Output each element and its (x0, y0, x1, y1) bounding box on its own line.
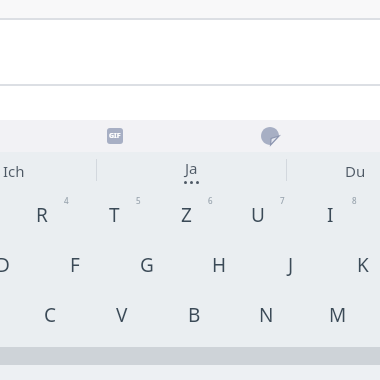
button[interactable]: Du (287, 152, 380, 190)
button[interactable]: U (222, 190, 294, 240)
button[interactable]: D (0, 240, 39, 290)
button[interactable]: K (327, 240, 380, 290)
button[interactable]: J (255, 240, 327, 290)
staticText: M (329, 302, 347, 328)
button[interactable]: B (158, 290, 230, 340)
staticText: H (212, 252, 227, 278)
button[interactable]: Ich (0, 152, 96, 190)
staticText: K (357, 252, 369, 278)
staticText: Ich (3, 161, 25, 181)
staticText: D (0, 252, 10, 278)
staticText: G (140, 252, 154, 278)
button[interactable]: M (302, 290, 374, 340)
staticText: C (44, 302, 57, 328)
staticText: 7 (280, 195, 285, 206)
button[interactable]: R (6, 190, 78, 240)
button[interactable]: G (111, 240, 183, 290)
staticText: 5 (136, 195, 141, 206)
staticText: 4 (64, 195, 69, 206)
button[interactable]: T (78, 190, 150, 240)
button[interactable]: N (230, 290, 302, 340)
staticText: B (188, 302, 201, 328)
staticText: I (327, 202, 334, 228)
staticText: 8 (352, 195, 357, 206)
staticText: R (36, 202, 48, 228)
button[interactable]: V (86, 290, 158, 340)
button[interactable]: C (14, 290, 86, 340)
button[interactable]: Z (150, 190, 222, 240)
button[interactable]: H (183, 240, 255, 290)
staticText: Du (345, 161, 366, 181)
button[interactable]: F (39, 240, 111, 290)
staticText: 6 (208, 195, 213, 206)
staticText: V (116, 302, 128, 328)
button[interactable]: I (294, 190, 366, 240)
button[interactable]: Ja (97, 152, 286, 190)
button[interactable]: Sticker (257, 123, 283, 149)
staticText: Ja (185, 158, 198, 178)
staticText: Z (181, 202, 192, 228)
staticText: GIF (109, 131, 121, 141)
staticText: J (288, 252, 294, 278)
staticText: T (109, 202, 120, 228)
staticText: N (259, 302, 274, 328)
staticText: F (70, 252, 80, 278)
staticText: U (251, 202, 265, 228)
button[interactable]: GIF (102, 123, 128, 149)
